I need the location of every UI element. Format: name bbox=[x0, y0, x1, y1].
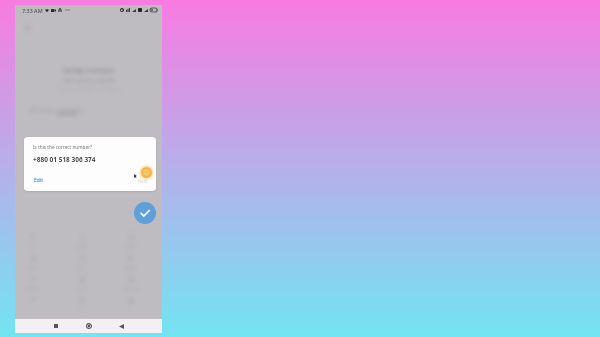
button[interactable]: Confirm bbox=[134, 202, 156, 224]
staticText: Next bbox=[138, 178, 148, 184]
staticText: Is this the correct number? bbox=[33, 144, 93, 150]
button[interactable]: Recents bbox=[50, 319, 62, 333]
button[interactable]: Edit bbox=[32, 176, 46, 185]
staticText: 7:33 AM bbox=[22, 7, 43, 14]
staticText: Phone number bbox=[30, 105, 84, 115]
staticText: Verify number bbox=[63, 65, 115, 75]
button[interactable]: Home bbox=[83, 319, 95, 333]
staticText: Edit bbox=[34, 177, 44, 184]
button[interactable]: Next bbox=[138, 164, 155, 181]
staticText: +880 01 518 306 374 bbox=[33, 155, 96, 164]
button[interactable]: Back bbox=[115, 319, 127, 333]
